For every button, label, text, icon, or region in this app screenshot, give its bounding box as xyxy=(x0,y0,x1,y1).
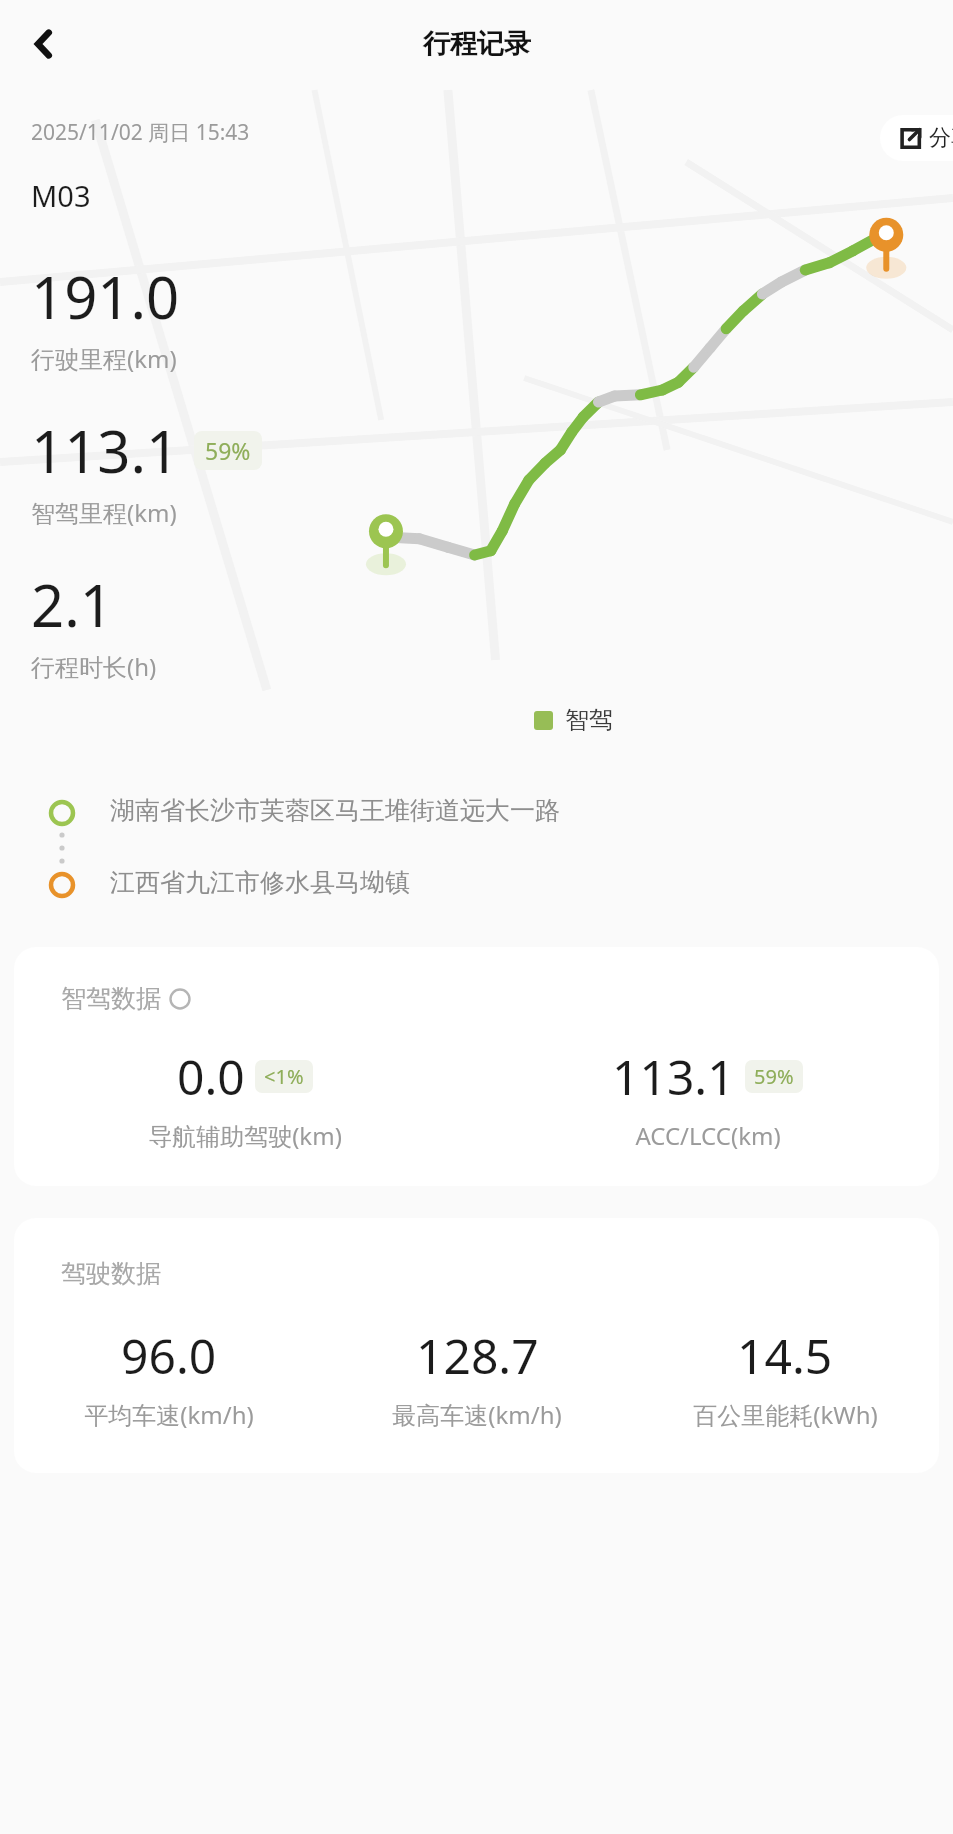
staticText: ACC/LCC(km) xyxy=(635,1119,781,1152)
button[interactable]: 智驾数据 xyxy=(14,947,939,1186)
staticText: 江西省九江市修水县马坳镇 xyxy=(110,867,410,898)
staticText: 智驾 xyxy=(565,705,613,735)
staticText: 128.7 xyxy=(416,1323,539,1388)
button[interactable]: 驾驶数据 xyxy=(14,1218,939,1473)
staticText: 0.0 xyxy=(177,1044,245,1109)
staticText: 智驾里程(km) xyxy=(31,496,177,529)
button[interactable]: Share xyxy=(880,115,953,161)
staticText: <1% xyxy=(264,1063,304,1090)
staticText: 导航辅助驾驶(km) xyxy=(148,1119,342,1152)
staticText: M03 xyxy=(31,176,91,215)
staticText: 行驶里程(km) xyxy=(31,342,177,375)
staticText: 智驾数据 xyxy=(61,983,161,1014)
staticText: 113.1 xyxy=(31,411,180,490)
staticText: 驾驶数据 xyxy=(61,1258,161,1289)
staticText: 191.0 xyxy=(31,257,180,336)
staticText: 百公里能耗(kWh) xyxy=(693,1398,878,1431)
staticText: 最高车速(km/h) xyxy=(392,1398,562,1431)
button[interactable]: Back xyxy=(16,16,72,72)
staticText: 96.0 xyxy=(121,1323,217,1388)
staticText: 行程时长(h) xyxy=(31,650,157,683)
staticText: 分享 xyxy=(929,124,953,152)
staticText: 2025/11/02 周日 15:43 xyxy=(31,118,250,147)
staticText: 2.1 xyxy=(31,565,113,644)
staticText: 14.5 xyxy=(737,1323,833,1388)
staticText: 59% xyxy=(754,1063,794,1090)
staticText: 113.1 xyxy=(612,1044,735,1109)
staticText: 59% xyxy=(205,435,251,466)
staticText: 湖南省长沙市芙蓉区马王堆街道远大一路 xyxy=(110,795,560,826)
staticText: 平均车速(km/h) xyxy=(84,1398,254,1431)
staticText: 行程记录 xyxy=(423,27,531,61)
